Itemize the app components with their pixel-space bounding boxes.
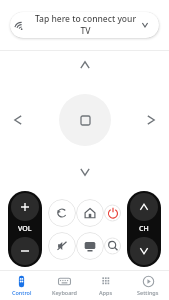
button[interactable]: Channel down	[130, 237, 158, 265]
button[interactable]: Power	[104, 199, 121, 227]
button[interactable]: Back	[48, 199, 76, 227]
button[interactable]: Tap here to connect your TV	[10, 12, 159, 38]
button[interactable]: Volume down	[11, 237, 39, 265]
button[interactable]: Down	[75, 162, 95, 182]
staticText: CH	[139, 224, 149, 234]
button[interactable]: Home	[76, 199, 104, 227]
button[interactable]: Control	[0, 271, 43, 300]
staticText: Settings	[137, 289, 159, 296]
button[interactable]: Volume up	[11, 193, 39, 221]
button[interactable]: Settings	[127, 271, 169, 300]
button[interactable]: Right	[141, 110, 161, 130]
staticText: VOL	[18, 224, 32, 234]
button[interactable]: Keyboard	[43, 271, 85, 300]
button[interactable]: Search	[104, 232, 121, 260]
button[interactable]: Inputs	[76, 232, 104, 260]
button[interactable]: Mute	[48, 232, 76, 260]
staticText: Apps	[99, 289, 113, 296]
button[interactable]: Apps	[85, 271, 127, 300]
button[interactable]: Select	[59, 94, 111, 146]
staticText: Tap here to connect your TV	[31, 13, 140, 37]
button[interactable]: Channel up	[130, 193, 158, 221]
staticText: Keyboard	[52, 289, 77, 296]
button[interactable]: Up	[75, 55, 95, 75]
staticText: Control	[12, 289, 32, 296]
button[interactable]: Left	[8, 110, 28, 130]
